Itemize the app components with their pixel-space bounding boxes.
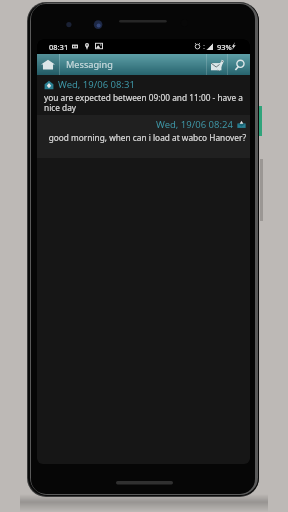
staticText: 93% (217, 42, 232, 52)
staticText: 08:31 (49, 42, 69, 52)
button[interactable]: Compose message (207, 54, 227, 75)
staticText: good morning, when can i load at wabco H… (48, 132, 246, 143)
staticText: Wed, 19/06 08:24 (156, 118, 233, 131)
button[interactable]: Search (228, 54, 250, 75)
button[interactable]: Home (37, 54, 59, 75)
button[interactable]: Wed, 19/06 08:31 (37, 75, 250, 115)
button[interactable]: Wed, 19/06 08:24 (37, 115, 250, 158)
staticText: Wed, 19/06 08:31 (58, 78, 135, 91)
staticText: : (203, 41, 206, 51)
staticText: you are expected between 09:00 and 11:00… (44, 92, 245, 114)
staticText: Messaging (66, 58, 113, 71)
